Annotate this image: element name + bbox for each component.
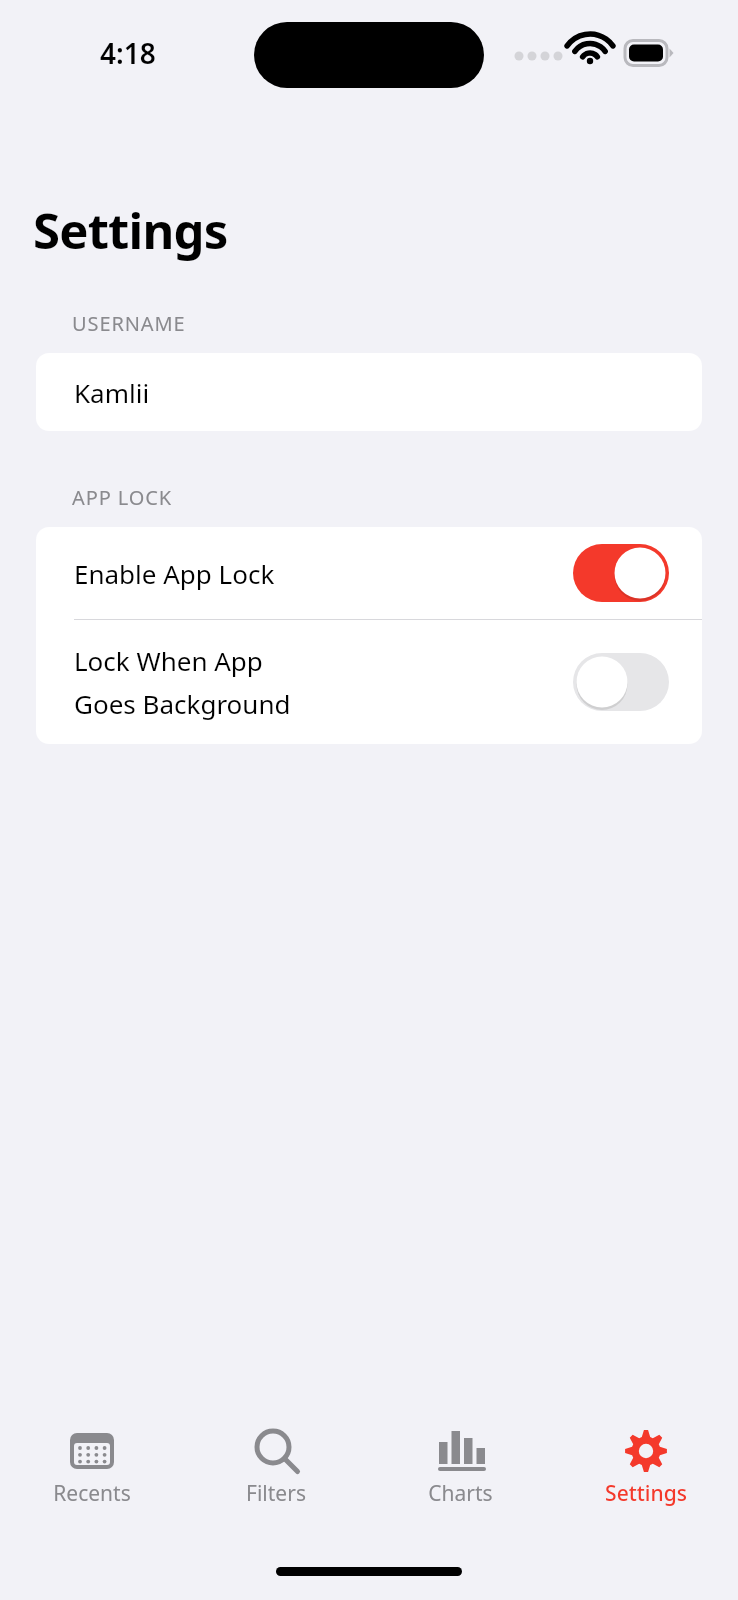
staticText: Recents — [53, 1479, 131, 1508]
staticText: USERNAME — [72, 310, 186, 337]
staticText: Filters — [246, 1479, 306, 1508]
button[interactable]: Recents — [0, 1414, 184, 1524]
staticText: Lock When App — [74, 643, 263, 678]
button[interactable]: Settings — [553, 1414, 738, 1524]
staticText: Settings — [33, 197, 228, 264]
button[interactable]: Toggle off — [573, 653, 669, 711]
button[interactable]: Lock When App — [36, 620, 702, 744]
button[interactable]: Filters — [184, 1414, 368, 1524]
staticText: Goes Background — [74, 686, 291, 721]
staticText: Settings — [605, 1479, 687, 1508]
button[interactable]: Kamlii — [36, 353, 702, 431]
staticText: APP LOCK — [72, 484, 173, 511]
staticText: Enable App Lock — [74, 556, 573, 591]
staticText: Kamlii — [74, 375, 150, 410]
button[interactable]: Charts — [368, 1414, 553, 1524]
staticText: Charts — [428, 1479, 493, 1508]
staticText: 4:18 — [100, 34, 156, 72]
button[interactable]: Enable App Lock — [36, 527, 702, 619]
button[interactable]: Toggle on — [573, 544, 669, 602]
